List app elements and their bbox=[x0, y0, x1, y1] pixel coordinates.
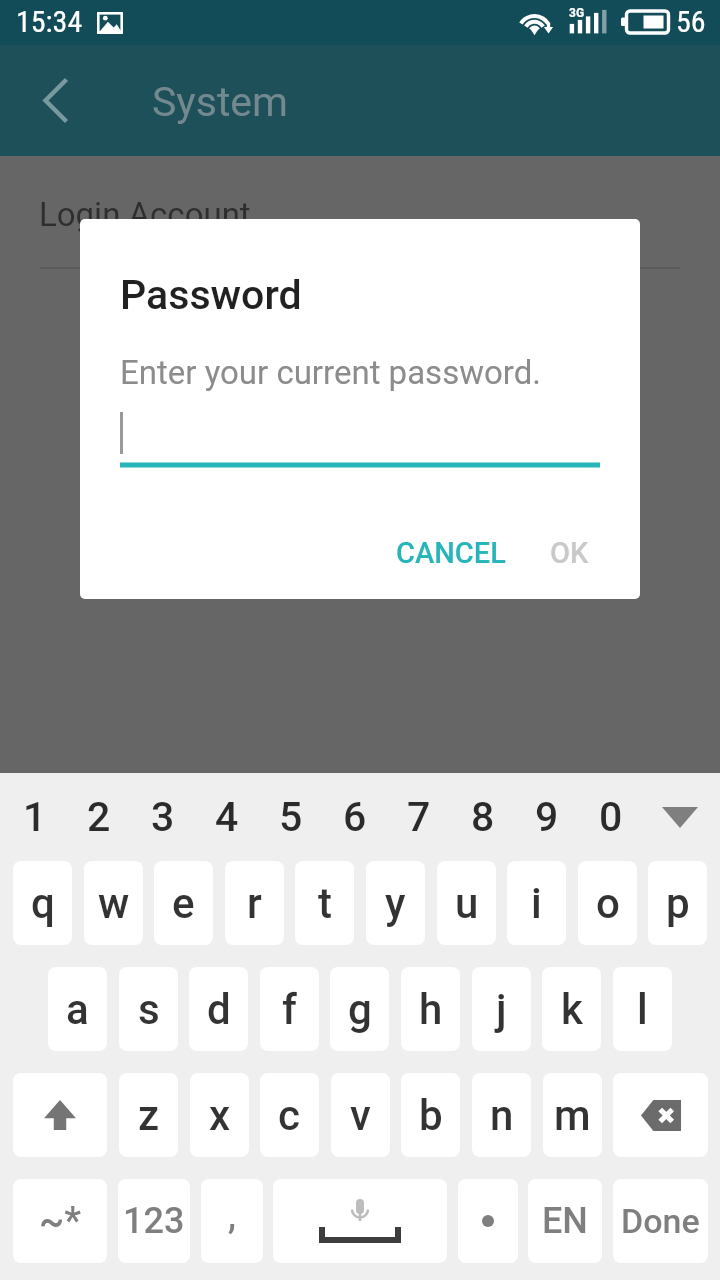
staticText: p bbox=[666, 879, 690, 928]
staticText: 1 bbox=[23, 793, 47, 841]
button[interactable]: a bbox=[48, 967, 107, 1051]
button[interactable]: 2 bbox=[67, 781, 131, 853]
staticText: Login Account bbox=[39, 195, 251, 234]
staticText: z bbox=[138, 1091, 160, 1140]
staticText: a bbox=[66, 985, 89, 1034]
staticText: m bbox=[554, 1091, 591, 1140]
button[interactable]: Period bbox=[458, 1179, 518, 1263]
button[interactable]: 8 bbox=[451, 781, 515, 853]
button[interactable]: CANCEL bbox=[370, 515, 531, 591]
button[interactable]: v bbox=[331, 1073, 390, 1157]
staticText: d bbox=[207, 985, 231, 1034]
button[interactable]: o bbox=[578, 861, 637, 945]
staticText: s bbox=[138, 985, 160, 1034]
staticText: 6 bbox=[343, 793, 367, 841]
button[interactable]: 0 bbox=[579, 781, 643, 853]
button[interactable]: 6 bbox=[323, 781, 387, 853]
button[interactable]: m bbox=[543, 1073, 602, 1157]
staticText: 5 bbox=[279, 793, 303, 841]
staticText: n bbox=[490, 1091, 514, 1140]
staticText: u bbox=[455, 879, 479, 928]
staticText: w bbox=[98, 879, 130, 928]
button[interactable]: n bbox=[472, 1073, 531, 1157]
staticText: 3G bbox=[569, 6, 585, 20]
staticText: b bbox=[419, 1091, 443, 1140]
staticText: 0 bbox=[599, 793, 623, 841]
staticText: r bbox=[247, 879, 262, 928]
button[interactable]: Backspace bbox=[613, 1073, 708, 1157]
button[interactable]: j bbox=[472, 967, 531, 1051]
button[interactable]: 4 bbox=[195, 781, 259, 853]
button[interactable]: Shift bbox=[13, 1073, 107, 1157]
button[interactable]: 1 bbox=[3, 781, 67, 853]
staticText: f bbox=[282, 985, 297, 1034]
staticText: 2 bbox=[87, 793, 111, 841]
staticText: g bbox=[348, 985, 372, 1034]
button[interactable]: Hide keyboard bbox=[648, 781, 712, 853]
staticText: 4 bbox=[215, 793, 239, 841]
button[interactable]: OK bbox=[520, 515, 619, 591]
staticText: 56 bbox=[676, 4, 706, 39]
button[interactable]: l bbox=[613, 967, 672, 1051]
button[interactable]: p bbox=[648, 861, 707, 945]
staticText: t bbox=[318, 879, 332, 928]
staticText: k bbox=[561, 985, 583, 1034]
button[interactable]: h bbox=[401, 967, 460, 1051]
staticText: EN bbox=[542, 1200, 588, 1242]
button[interactable]: s bbox=[119, 967, 178, 1051]
staticText: v bbox=[350, 1091, 371, 1140]
button[interactable]: Back bbox=[0, 45, 112, 156]
button[interactable]: ~* bbox=[13, 1179, 107, 1263]
staticText: Enter your current password. bbox=[120, 353, 541, 392]
staticText: 8 bbox=[471, 793, 495, 841]
staticText: o bbox=[596, 879, 620, 928]
button[interactable]: 3 bbox=[131, 781, 195, 853]
button[interactable]: g bbox=[330, 967, 389, 1051]
staticText: Password bbox=[120, 271, 302, 319]
staticText: 3 bbox=[151, 793, 175, 841]
button[interactable]: k bbox=[542, 967, 601, 1051]
staticText: , bbox=[228, 1195, 236, 1237]
staticText: i bbox=[531, 879, 542, 928]
staticText: x bbox=[209, 1091, 231, 1140]
button[interactable]: f bbox=[260, 967, 319, 1051]
button[interactable]: d bbox=[189, 967, 248, 1051]
staticText: CANCEL bbox=[396, 536, 506, 570]
button[interactable]: , bbox=[201, 1179, 263, 1263]
button[interactable]: z bbox=[119, 1073, 178, 1157]
staticText: c bbox=[278, 1091, 301, 1140]
staticText: h bbox=[419, 985, 443, 1034]
button[interactable]: u bbox=[437, 861, 496, 945]
button[interactable]: Space bbox=[273, 1179, 447, 1263]
staticText: Done bbox=[621, 1201, 700, 1241]
button[interactable]: Done bbox=[613, 1179, 708, 1263]
staticText: 9 bbox=[535, 793, 559, 841]
button[interactable]: 5 bbox=[259, 781, 323, 853]
button[interactable]: i bbox=[507, 861, 566, 945]
button[interactable]: c bbox=[260, 1073, 319, 1157]
button[interactable]: q bbox=[13, 861, 72, 945]
button[interactable]: 7 bbox=[387, 781, 451, 853]
staticText: ~* bbox=[39, 1199, 82, 1244]
staticText: 15:34 bbox=[16, 4, 83, 39]
button[interactable]: 9 bbox=[515, 781, 579, 853]
staticText: 123 bbox=[123, 1200, 185, 1242]
staticText: System bbox=[152, 78, 289, 126]
button[interactable]: e bbox=[154, 861, 213, 945]
button[interactable]: w bbox=[84, 861, 143, 945]
staticText: OK bbox=[550, 536, 589, 570]
button[interactable]: y bbox=[366, 861, 425, 945]
button[interactable]: t bbox=[295, 861, 354, 945]
button[interactable]: b bbox=[401, 1073, 460, 1157]
button[interactable]: EN bbox=[528, 1179, 602, 1263]
staticText: q bbox=[31, 879, 55, 928]
button[interactable]: 123 bbox=[118, 1179, 190, 1263]
button[interactable]: x bbox=[190, 1073, 249, 1157]
staticText: e bbox=[172, 879, 195, 928]
staticText: 7 bbox=[407, 793, 431, 841]
staticText: j bbox=[496, 985, 507, 1034]
button[interactable]: r bbox=[225, 861, 284, 945]
staticText: l bbox=[637, 985, 648, 1034]
staticText: y bbox=[385, 879, 406, 928]
